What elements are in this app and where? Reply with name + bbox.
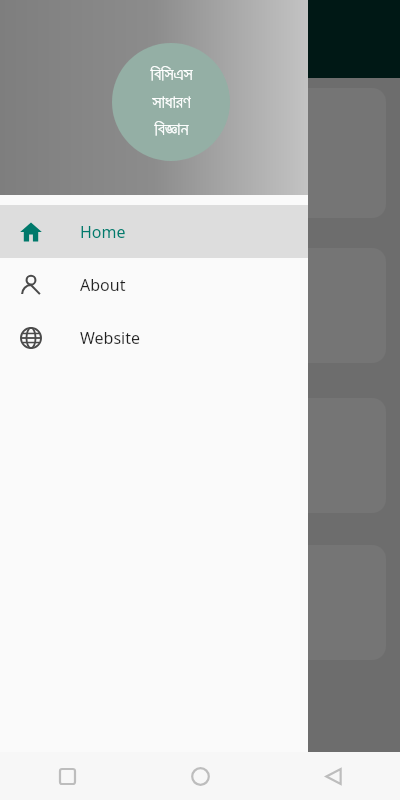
button[interactable]: Recents	[0, 752, 134, 800]
button[interactable]: Back	[267, 752, 400, 800]
staticText: About	[80, 274, 126, 296]
button[interactable]: Website	[0, 311, 308, 364]
button[interactable]: আধুনিক প্রযুক্তি ও তথ্য	[14, 545, 386, 660]
button[interactable]: জীব বিজ্ঞানের মৌলিক ও প্রয়োগিক ব্যবহার	[14, 398, 386, 513]
button[interactable]: Home	[0, 205, 308, 258]
other: Home	[19, 220, 43, 244]
staticText: বিজ্ঞান সম্পর্কে প্রাথমিক ধারণা ও কিছু গ…	[105, 129, 296, 178]
staticText: Website	[80, 327, 141, 349]
staticText: পদার্থ বিজ্ঞান ও রসায়ন বিজ্ঞানের মৌলিক …	[118, 269, 282, 342]
other: Website	[19, 326, 43, 350]
staticText: বিসিএস সাধারণ বিজ্ঞান	[150, 66, 193, 138]
button[interactable]: Home	[134, 752, 267, 800]
button[interactable]: About	[0, 258, 308, 311]
button[interactable]: পদার্থ বিজ্ঞান ও রসায়ন বিজ্ঞানের মৌলিক …	[14, 248, 386, 363]
button[interactable]: বিজ্ঞান সম্পর্কে প্রাথমিক ধারণা ও কিছু গ…	[14, 88, 386, 218]
other: About	[19, 273, 43, 297]
staticText: Home	[80, 221, 126, 243]
